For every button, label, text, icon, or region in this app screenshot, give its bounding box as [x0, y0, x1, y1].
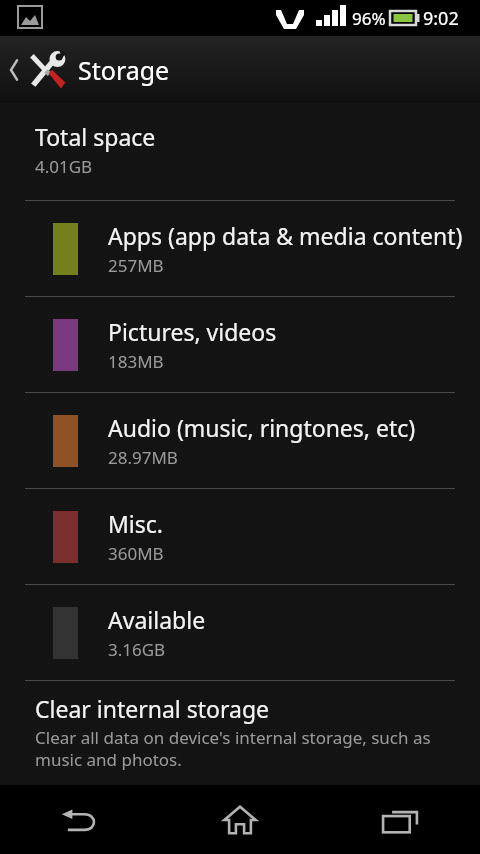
staticText: 3.16GB [108, 638, 166, 661]
button[interactable]: Available [0, 585, 480, 680]
button[interactable]: Clear internal storage [0, 681, 480, 771]
staticText: Misc. [108, 508, 164, 539]
button[interactable]: Pictures, videos [0, 297, 480, 392]
staticText: Apps (app data & media content) [108, 220, 463, 251]
staticText: Clear all data on device's internal stor… [35, 726, 466, 771]
staticText: Clear internal storage [35, 693, 270, 724]
staticText: 28.97MB [108, 446, 178, 469]
staticText: Available [108, 604, 206, 635]
staticText: 183MB [108, 350, 164, 373]
button[interactable]: Recent apps [320, 785, 480, 854]
button[interactable]: Navigate up [0, 36, 480, 103]
staticText: 4.01GB [35, 155, 93, 178]
button[interactable]: Audio (music, ringtones, etc) [0, 393, 480, 488]
staticText: Audio (music, ringtones, etc) [108, 412, 416, 443]
button[interactable]: Back [0, 785, 160, 854]
button[interactable]: Home [160, 785, 320, 854]
staticText: Pictures, videos [108, 316, 277, 347]
staticText: Storage [78, 53, 170, 87]
staticText: Total space [35, 121, 156, 152]
staticText: 360MB [108, 542, 164, 565]
staticText: 257MB [108, 254, 164, 277]
staticText: 96% [352, 7, 386, 30]
button[interactable]: Apps (app data & media content) [0, 201, 480, 296]
button[interactable]: Misc. [0, 489, 480, 584]
staticText: 9:02 [423, 6, 459, 31]
